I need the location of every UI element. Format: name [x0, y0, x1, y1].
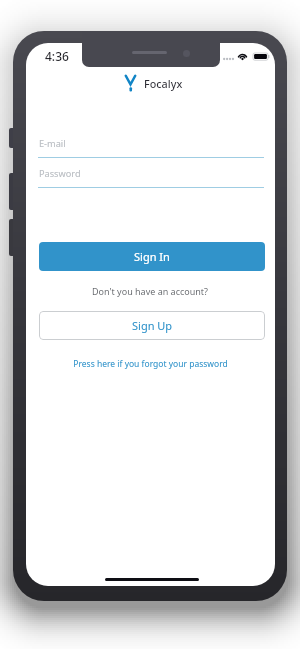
- staticText: Password: [39, 167, 81, 180]
- staticText: Focalyx: [144, 76, 183, 91]
- staticText: Sign In: [134, 249, 170, 264]
- button[interactable]: Sign Up: [39, 311, 265, 340]
- button[interactable]: Press here if you forgot your password: [26, 358, 275, 370]
- staticText: Don't you have an account?: [92, 285, 209, 297]
- button[interactable]: Sign In: [39, 242, 265, 271]
- staticText: 4:36: [45, 48, 69, 64]
- staticText: Sign Up: [132, 318, 173, 333]
- staticText: Press here if you forgot your password: [73, 358, 228, 370]
- staticText: E-mail: [39, 137, 66, 150]
